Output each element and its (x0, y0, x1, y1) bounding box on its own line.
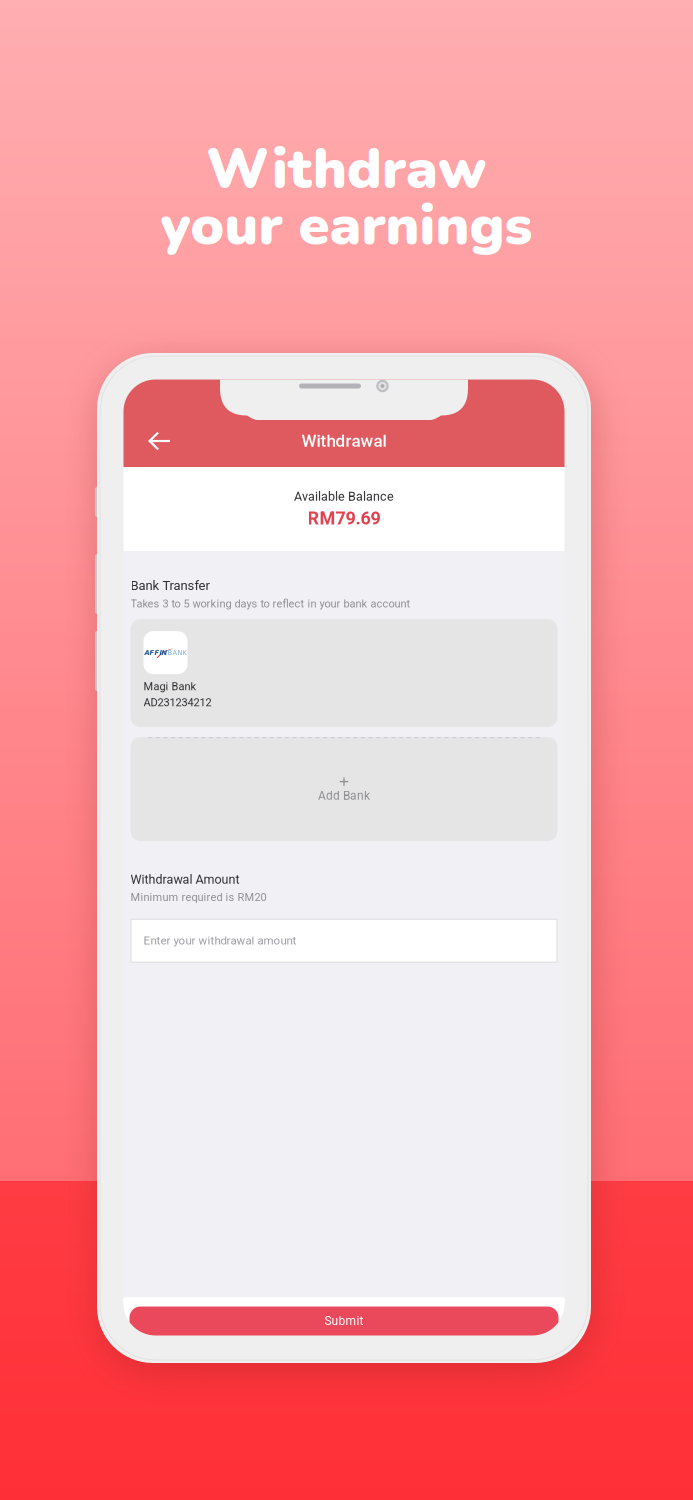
staticText: Enter your withdrawal amount (143, 934, 296, 947)
staticText: Minimum required is RM20 (130, 891, 266, 904)
staticText: your earnings (160, 187, 532, 264)
staticText: Withdrawal Amount (130, 872, 239, 887)
staticText: Withdraw (206, 131, 487, 207)
staticText: Submit (324, 1314, 363, 1328)
staticText: Available Balance (294, 489, 394, 504)
staticText: AD231234212 (143, 696, 211, 709)
button[interactable]: Add Bank (130, 737, 557, 841)
staticText: BANK (167, 649, 186, 656)
staticText: Takes 3 to 5 working days to reflect in … (130, 597, 410, 610)
staticText: Add Bank (318, 789, 370, 803)
button[interactable]: Back (123, 419, 219, 463)
staticText: AFFIN (144, 649, 167, 656)
staticText: Withdrawal (301, 431, 386, 451)
button[interactable]: AFFIN (130, 619, 557, 727)
button[interactable]: Submit (129, 1306, 558, 1335)
staticText: Bank Transfer (130, 578, 209, 593)
staticText: Magi Bank (143, 680, 196, 693)
staticText: RM79.69 (307, 508, 380, 529)
